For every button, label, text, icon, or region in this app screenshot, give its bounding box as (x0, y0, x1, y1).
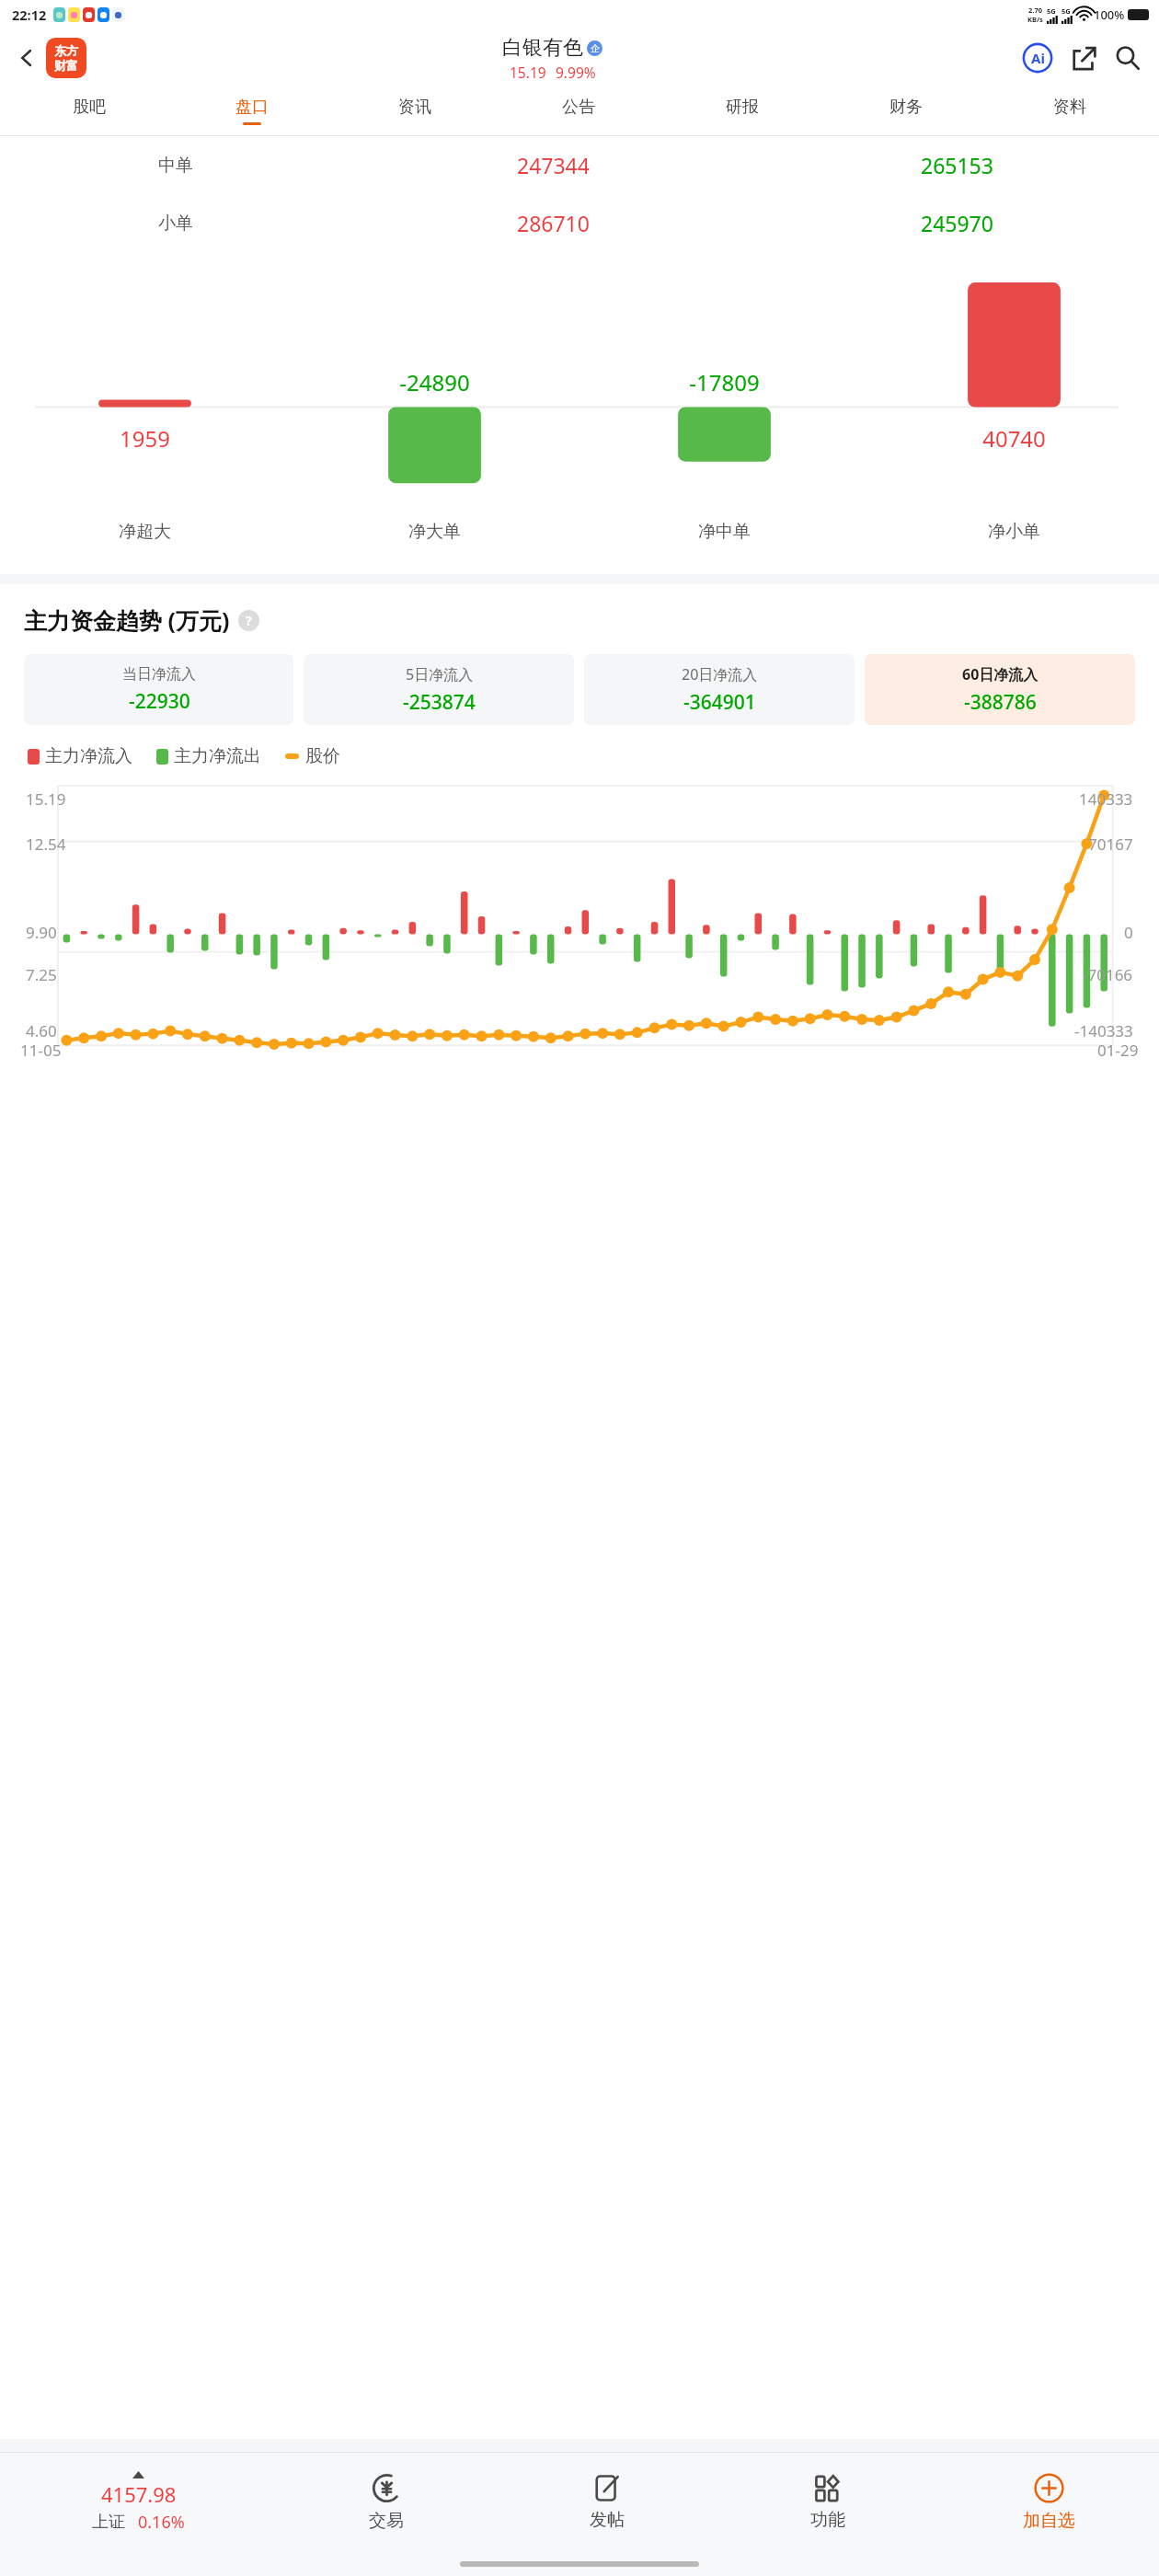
staticText: 研报 (726, 97, 759, 118)
staticText: 2.70 (1028, 6, 1042, 15)
staticText: 资讯 (398, 97, 431, 118)
staticText: 财富 (54, 58, 78, 73)
staticText: 286710 (517, 209, 590, 237)
staticText: 净超大 (119, 521, 171, 543)
button[interactable]: 60日净流入 (865, 654, 1135, 725)
staticText: 5G (1061, 6, 1071, 16)
staticText: -24890 (399, 367, 470, 397)
button[interactable]: Help (238, 610, 259, 631)
staticText: 70167 (1088, 834, 1133, 855)
button[interactable]: 功能 (717, 2453, 938, 2552)
staticText: 功能 (810, 2509, 845, 2531)
staticText: 7.25 (26, 964, 57, 985)
staticText: 净中单 (698, 521, 751, 543)
button[interactable]: 交易 (276, 2453, 497, 2552)
button[interactable]: 发帖 (497, 2453, 717, 2552)
staticText: 9.99% (556, 63, 596, 82)
staticText: 交易 (369, 2510, 404, 2532)
staticText: -22930 (129, 688, 190, 715)
staticText: 4.60 (26, 1020, 57, 1041)
staticText: 股价 (305, 745, 340, 767)
staticText: 20日净流入 (682, 664, 758, 684)
staticText: 财务 (889, 97, 923, 118)
staticText: 22:12 (12, 6, 47, 24)
staticText: 4157.98 (101, 2480, 177, 2508)
button[interactable]: 加自选 (938, 2453, 1159, 2552)
staticText: 资料 (1053, 97, 1086, 118)
staticText: 发帖 (590, 2509, 625, 2531)
staticText: 01-29 (1097, 1040, 1139, 1061)
staticText: 265153 (921, 151, 993, 179)
button[interactable]: 20日净流入 (584, 654, 855, 725)
button[interactable]: Search (1109, 40, 1146, 76)
button[interactable]: 公告 (497, 86, 660, 135)
staticText: 股吧 (73, 97, 106, 118)
staticText: 15.19 (26, 788, 66, 810)
staticText: 净小单 (988, 521, 1040, 543)
staticText: 白银有色 (502, 35, 583, 61)
staticText: 加自选 (1023, 2510, 1075, 2532)
staticText: 主力净流入 (45, 745, 132, 767)
staticText: 企 (591, 42, 600, 54)
staticText: -388786 (964, 689, 1037, 716)
staticText: 40740 (982, 423, 1046, 454)
button[interactable]: 研报 (660, 86, 824, 135)
button[interactable]: 盘口 (170, 86, 333, 135)
staticText: 东方 (54, 43, 78, 58)
staticText: 5G (1047, 6, 1056, 16)
staticText: 盘口 (235, 97, 269, 118)
button[interactable]: 财务 (824, 86, 988, 135)
staticText: 0.16% (138, 2511, 185, 2534)
staticText: 5日净流入 (406, 664, 474, 684)
staticText: -253874 (403, 689, 476, 716)
staticText: 中单 (158, 155, 193, 177)
staticText: 247344 (517, 151, 590, 179)
staticText: ? (246, 612, 252, 629)
staticText: 140333 (1079, 788, 1133, 810)
button[interactable]: East Money (46, 38, 86, 78)
staticText: 11-05 (20, 1040, 62, 1061)
staticText: 245970 (921, 209, 993, 237)
staticText: 公告 (562, 97, 595, 118)
staticText: 主力资金趋势 (万元) (24, 604, 230, 636)
staticText: 100% (1094, 6, 1125, 23)
button[interactable]: Share (1065, 40, 1102, 76)
button[interactable]: Back (7, 39, 46, 77)
button[interactable]: 资料 (988, 86, 1152, 135)
button[interactable]: 4157.98 (0, 2453, 276, 2552)
staticText: -140333 (1074, 1020, 1133, 1041)
staticText: 0 (1124, 922, 1133, 943)
button[interactable]: AI (1019, 40, 1056, 76)
staticText: 小单 (158, 213, 193, 235)
button[interactable]: 当日净流入 (24, 654, 293, 725)
staticText: 12.54 (26, 834, 66, 855)
button[interactable]: 白银有色 (502, 35, 602, 82)
button[interactable]: 资讯 (333, 86, 497, 135)
staticText: 60日净流入 (962, 664, 1039, 684)
staticText: 1959 (120, 423, 170, 454)
button[interactable]: 5日净流入 (304, 654, 574, 725)
staticText: 上证 (92, 2512, 125, 2533)
staticText: -70166 (1083, 964, 1133, 985)
staticText: 9.90 (26, 922, 57, 943)
staticText: KB/s (1027, 15, 1043, 24)
button[interactable]: 股吧 (7, 86, 170, 135)
staticText: 15.19 (510, 63, 546, 82)
staticText: -17809 (689, 367, 760, 397)
staticText: 净大单 (408, 521, 461, 543)
staticText: 当日净流入 (122, 665, 196, 684)
staticText: -364901 (683, 689, 756, 716)
staticText: 主力净流出 (174, 745, 261, 767)
staticText: Ai (1031, 49, 1045, 67)
